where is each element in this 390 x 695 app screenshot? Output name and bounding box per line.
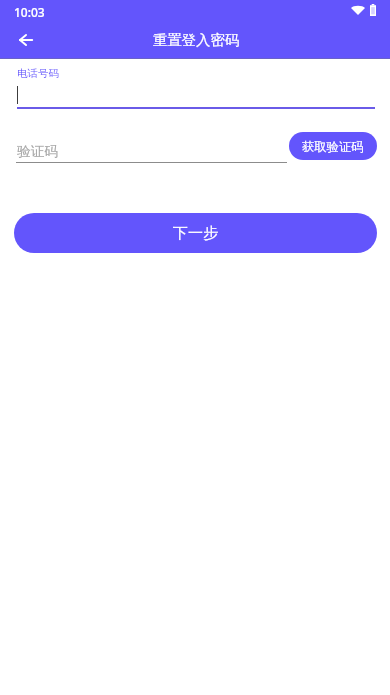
button[interactable]: Back: [10, 24, 42, 56]
staticText: 10:03: [14, 4, 45, 20]
button[interactable]: 电话号码: [14, 64, 376, 109]
button[interactable]: 获取验证码: [289, 132, 377, 160]
staticText: 获取验证码: [302, 139, 364, 154]
button[interactable]: 验证码: [14, 138, 289, 164]
button[interactable]: 下一步: [14, 213, 377, 253]
staticText: 验证码: [17, 143, 59, 160]
staticText: 重置登入密码: [1, 31, 390, 49]
staticText: 下一步: [173, 224, 218, 243]
staticText: 电话号码: [17, 67, 59, 80]
